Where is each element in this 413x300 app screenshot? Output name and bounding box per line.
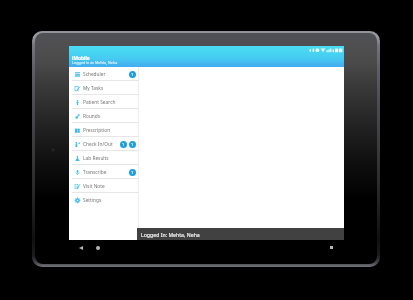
button[interactable]: Recent apps [324, 240, 338, 255]
staticText: Scheduler [83, 71, 106, 78]
staticText: Settings [83, 197, 102, 204]
staticText: Patient Search [83, 99, 116, 106]
staticText: Logged in as Mehta, Neha [72, 60, 118, 65]
button[interactable]: Rounds [69, 109, 139, 123]
staticText: My Tasks [83, 85, 104, 92]
button[interactable]: Home [91, 240, 105, 255]
staticText: Logged In: Mehta, Neha [141, 231, 200, 238]
staticText: Prescription [83, 127, 111, 134]
button[interactable]: Prescription [69, 123, 139, 137]
button[interactable]: My Tasks [69, 81, 139, 95]
button[interactable]: Visit Note [69, 179, 139, 193]
button[interactable]: Transcribe [69, 165, 139, 179]
staticText: 1 [131, 170, 134, 175]
button[interactable]: Lab Results [69, 151, 139, 165]
staticText: Check In/Out [83, 141, 113, 148]
button[interactable]: Check In/Out [69, 137, 139, 151]
button[interactable]: Patient Search [69, 95, 139, 109]
staticText: 1 [131, 72, 134, 77]
staticText: Visit Note [83, 183, 105, 190]
staticText: iMobile [72, 55, 90, 62]
button[interactable]: Scheduler [69, 67, 139, 81]
staticText: 1 [131, 142, 134, 147]
staticText: Rounds [83, 113, 101, 120]
button[interactable]: Settings [69, 193, 139, 207]
staticText: Lab Results [83, 155, 109, 162]
staticText: 1 [122, 142, 125, 147]
button[interactable]: Back [74, 240, 88, 255]
staticText: Transcribe [83, 169, 107, 176]
